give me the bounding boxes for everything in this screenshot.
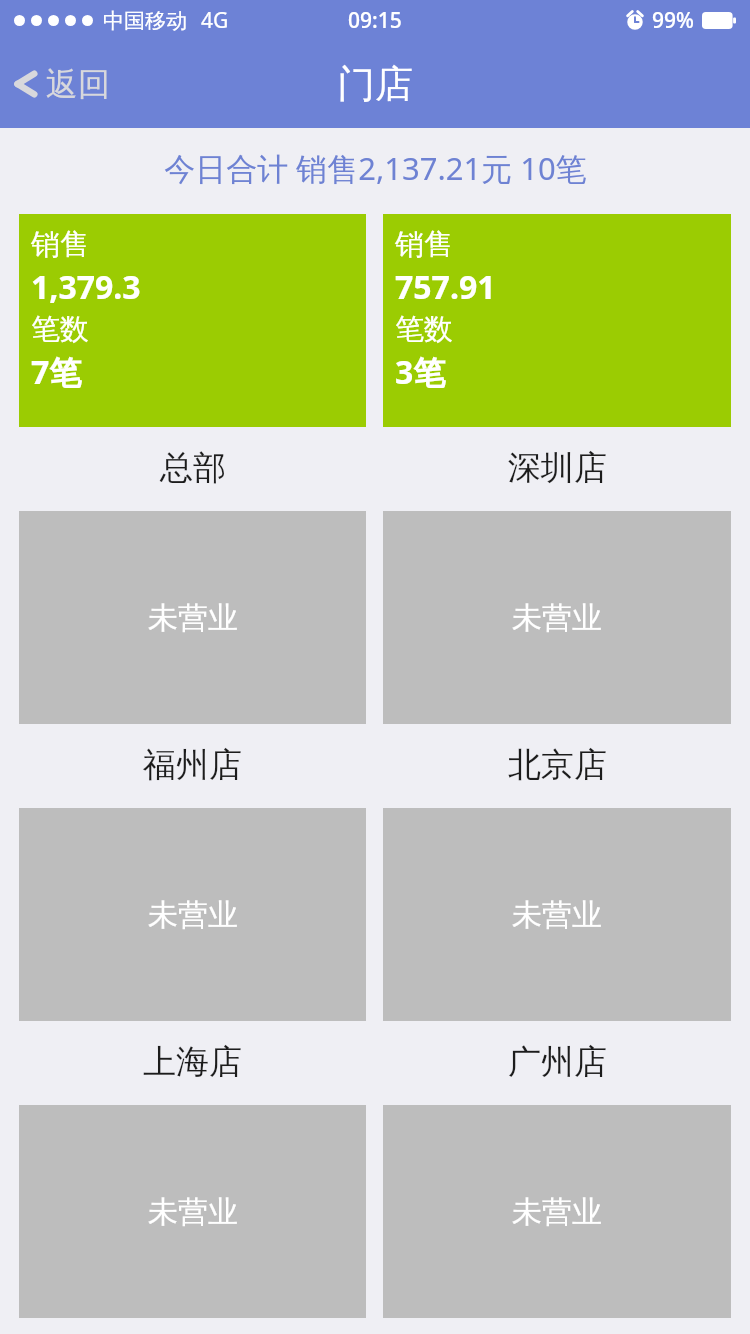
staticText: 总部 [160,447,226,489]
staticText: 北京店 [508,744,607,786]
staticText: 未营业 [148,599,238,637]
staticText: 4G [201,6,229,35]
staticText: 销售 [31,226,89,263]
staticText: 7笔 [31,350,82,394]
staticText: 笔数 [395,311,453,348]
staticText: 返回 [46,64,110,104]
button[interactable]: 未营业 [19,1105,366,1334]
button[interactable]: 未营业 [383,511,731,808]
button[interactable]: 返回 [0,54,128,114]
staticText: 1,379.3 [31,265,141,309]
staticText: 福州店 [143,744,242,786]
staticText: 今日合计 销售2,137.21元 10笔 [164,147,587,189]
staticText: 笔数 [31,311,89,348]
staticText: 深圳店 [508,447,607,489]
staticText: 未营业 [512,1193,602,1231]
staticText: 未营业 [148,1193,238,1231]
staticText: 广州店 [508,1041,607,1083]
staticText: 销售 [395,226,453,263]
staticText: 未营业 [512,896,602,934]
staticText: 门店 [337,60,413,108]
button[interactable]: 未营业 [19,511,366,808]
staticText: 上海店 [143,1041,242,1083]
staticText: 未营业 [148,896,238,934]
button[interactable]: 未营业 [383,808,731,1105]
staticText: 09:15 [348,6,402,35]
staticText: 未营业 [512,599,602,637]
staticText: 99% [652,6,694,35]
staticText: 中国移动 [103,8,187,34]
button[interactable]: 未营业 [383,1105,731,1334]
button[interactable]: 未营业 [19,808,366,1105]
button[interactable]: 销售 [383,214,731,511]
button[interactable]: 销售 [19,214,366,511]
staticText: 3笔 [395,350,446,394]
staticText: 757.91 [395,265,496,309]
